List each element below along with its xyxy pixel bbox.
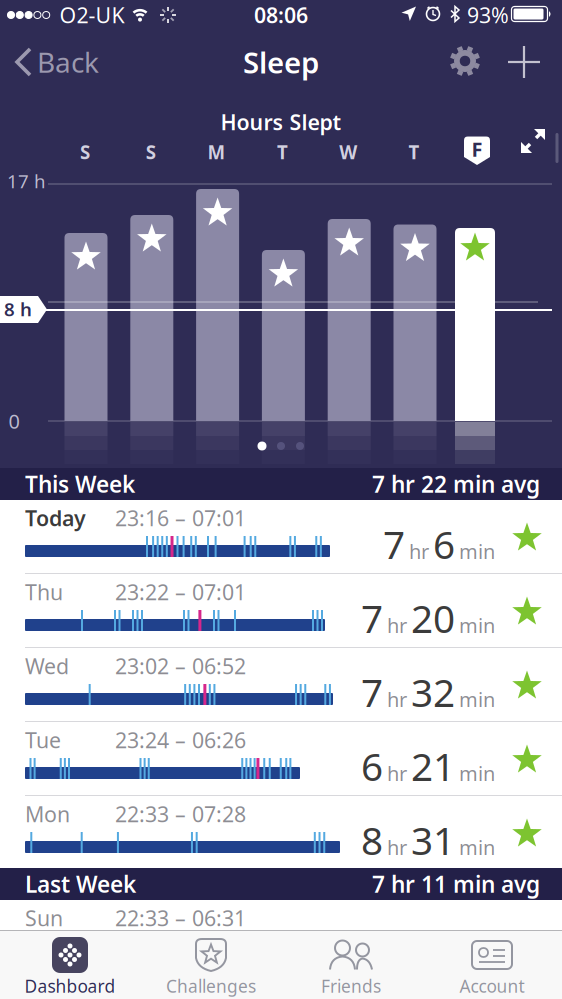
staticText: 17 h <box>7 169 46 193</box>
staticText: 08:06 <box>254 1 308 29</box>
staticText: T <box>277 140 288 164</box>
staticText: min <box>459 760 495 787</box>
staticText: 23:16 – 07:01 <box>115 504 246 532</box>
staticText: W <box>339 140 357 164</box>
staticText: Wed <box>25 652 69 680</box>
staticText: 22:33 – 07:28 <box>115 800 246 828</box>
staticText: 7 hr 11 min avg <box>372 869 540 899</box>
staticText: Mon <box>25 800 70 828</box>
staticText: min <box>459 686 495 713</box>
staticText: 31 <box>411 814 455 866</box>
staticText: 21 <box>411 740 455 792</box>
staticText: Sleep <box>243 42 319 81</box>
staticText: 20 <box>411 592 455 644</box>
staticText: min <box>459 538 495 565</box>
staticText: min <box>459 834 495 861</box>
staticText: Thu <box>25 578 63 606</box>
staticText: F <box>471 136 482 162</box>
staticText: 23:24 – 06:26 <box>115 726 246 754</box>
staticText: 32 <box>411 666 455 718</box>
staticText: Hours Slept <box>220 108 341 136</box>
staticText: 22:33 – 06:31 <box>115 904 246 932</box>
staticText: 0 <box>8 408 19 434</box>
staticText: 23:02 – 06:52 <box>115 652 246 680</box>
staticText: Account <box>459 974 524 997</box>
staticText: 6 <box>433 518 455 570</box>
staticText: Challenges <box>166 974 256 997</box>
staticText: S <box>80 140 90 164</box>
staticText: 7 <box>361 666 383 718</box>
staticText: hr <box>409 538 429 565</box>
staticText: O2-UK <box>59 1 124 29</box>
staticText: hr <box>387 686 407 713</box>
staticText: hr <box>387 834 407 861</box>
staticText: T <box>408 140 419 164</box>
staticText: 8 <box>361 814 383 866</box>
staticText: hr <box>387 760 407 787</box>
staticText: hr <box>387 612 407 639</box>
staticText: min <box>459 612 495 639</box>
staticText: Sun <box>25 904 63 932</box>
staticText: 7 hr 22 min avg <box>372 469 540 499</box>
staticText: Back <box>37 43 99 81</box>
staticText: Friends <box>321 974 381 997</box>
staticText: Tue <box>25 726 61 754</box>
staticText: Dashboard <box>24 974 115 997</box>
staticText: 6 <box>361 740 383 792</box>
staticText: 93% <box>467 1 509 29</box>
staticText: 7 <box>361 592 383 644</box>
staticText: 7 <box>383 518 405 570</box>
staticText: This Week <box>25 469 135 499</box>
staticText: S <box>146 140 156 164</box>
staticText: 8 h <box>4 297 32 321</box>
staticText: Last Week <box>25 869 136 899</box>
staticText: Today <box>25 504 86 532</box>
staticText: 23:22 – 07:01 <box>115 578 246 606</box>
staticText: M <box>208 140 226 164</box>
